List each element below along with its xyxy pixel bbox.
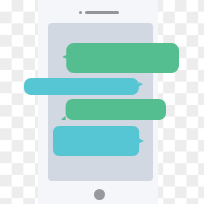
- button[interactable]: Message: [62, 43, 179, 73]
- button[interactable]: Message: [53, 126, 144, 156]
- button[interactable]: Message: [24, 78, 143, 95]
- button[interactable]: Message: [61, 99, 166, 120]
- button[interactable]: Home: [94, 189, 105, 200]
